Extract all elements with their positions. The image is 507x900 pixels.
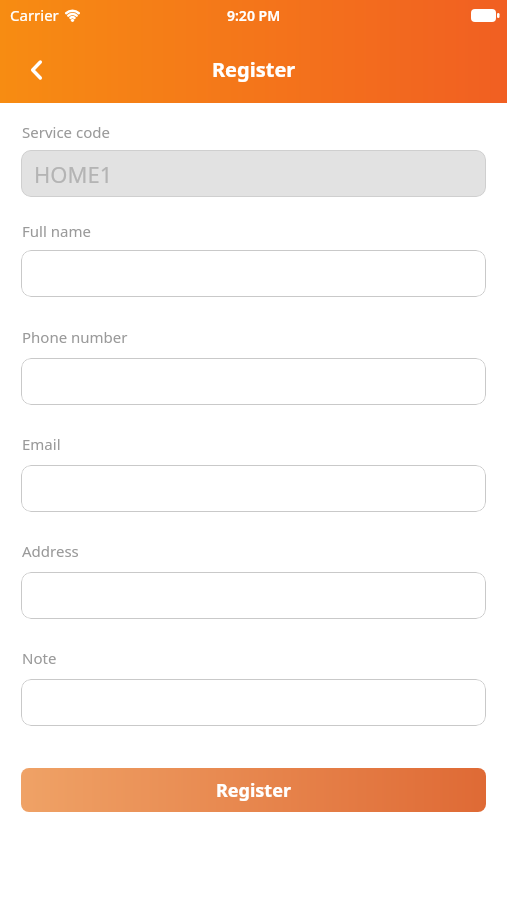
staticText: Register [216,778,291,803]
staticText: Address [22,541,79,561]
staticText: Carrier [10,5,59,25]
staticText: 9:20 PM [227,6,281,25]
staticText: Note [22,648,57,668]
staticText: HOME1 [34,159,113,189]
staticText: Service code [22,122,110,142]
button[interactable]: Register [21,768,486,812]
button[interactable] [21,358,486,405]
button[interactable]: HOME1 [21,150,486,197]
button[interactable] [21,465,486,512]
staticText: Email [22,434,61,454]
staticText: Register [212,56,296,83]
staticText: Full name [22,221,91,241]
button[interactable] [21,679,486,726]
button[interactable] [21,572,486,619]
staticText: Phone number [22,327,128,347]
button[interactable] [16,50,56,90]
button[interactable] [21,250,486,297]
